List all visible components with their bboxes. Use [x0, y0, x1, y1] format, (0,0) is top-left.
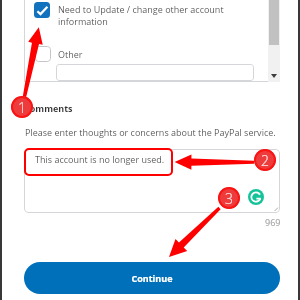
button[interactable]: Unchecked	[32, 45, 248, 62]
other: Checked	[34, 2, 50, 18]
button[interactable]: Other reason	[56, 64, 254, 81]
button[interactable]: Checked	[32, 0, 248, 28]
button[interactable]: Continue	[24, 262, 280, 294]
button[interactable]: Grammarly	[248, 189, 264, 205]
staticText: Need to Update / change other account in…	[58, 3, 224, 27]
other: Unchecked	[35, 46, 51, 62]
button[interactable]: Scroll bar	[268, 0, 280, 82]
staticText: Continue	[131, 272, 173, 284]
staticText: 1	[18, 98, 26, 117]
staticText: 969	[265, 216, 281, 228]
staticText: 2	[261, 151, 269, 170]
staticText: This account is no longer used.	[35, 153, 165, 165]
staticText: 3	[225, 189, 233, 208]
staticText: Please enter thoughts or concerns about …	[25, 126, 276, 138]
button[interactable]: Comments field	[24, 149, 280, 213]
staticText: Other	[58, 48, 83, 60]
staticText: Comments	[24, 102, 73, 114]
